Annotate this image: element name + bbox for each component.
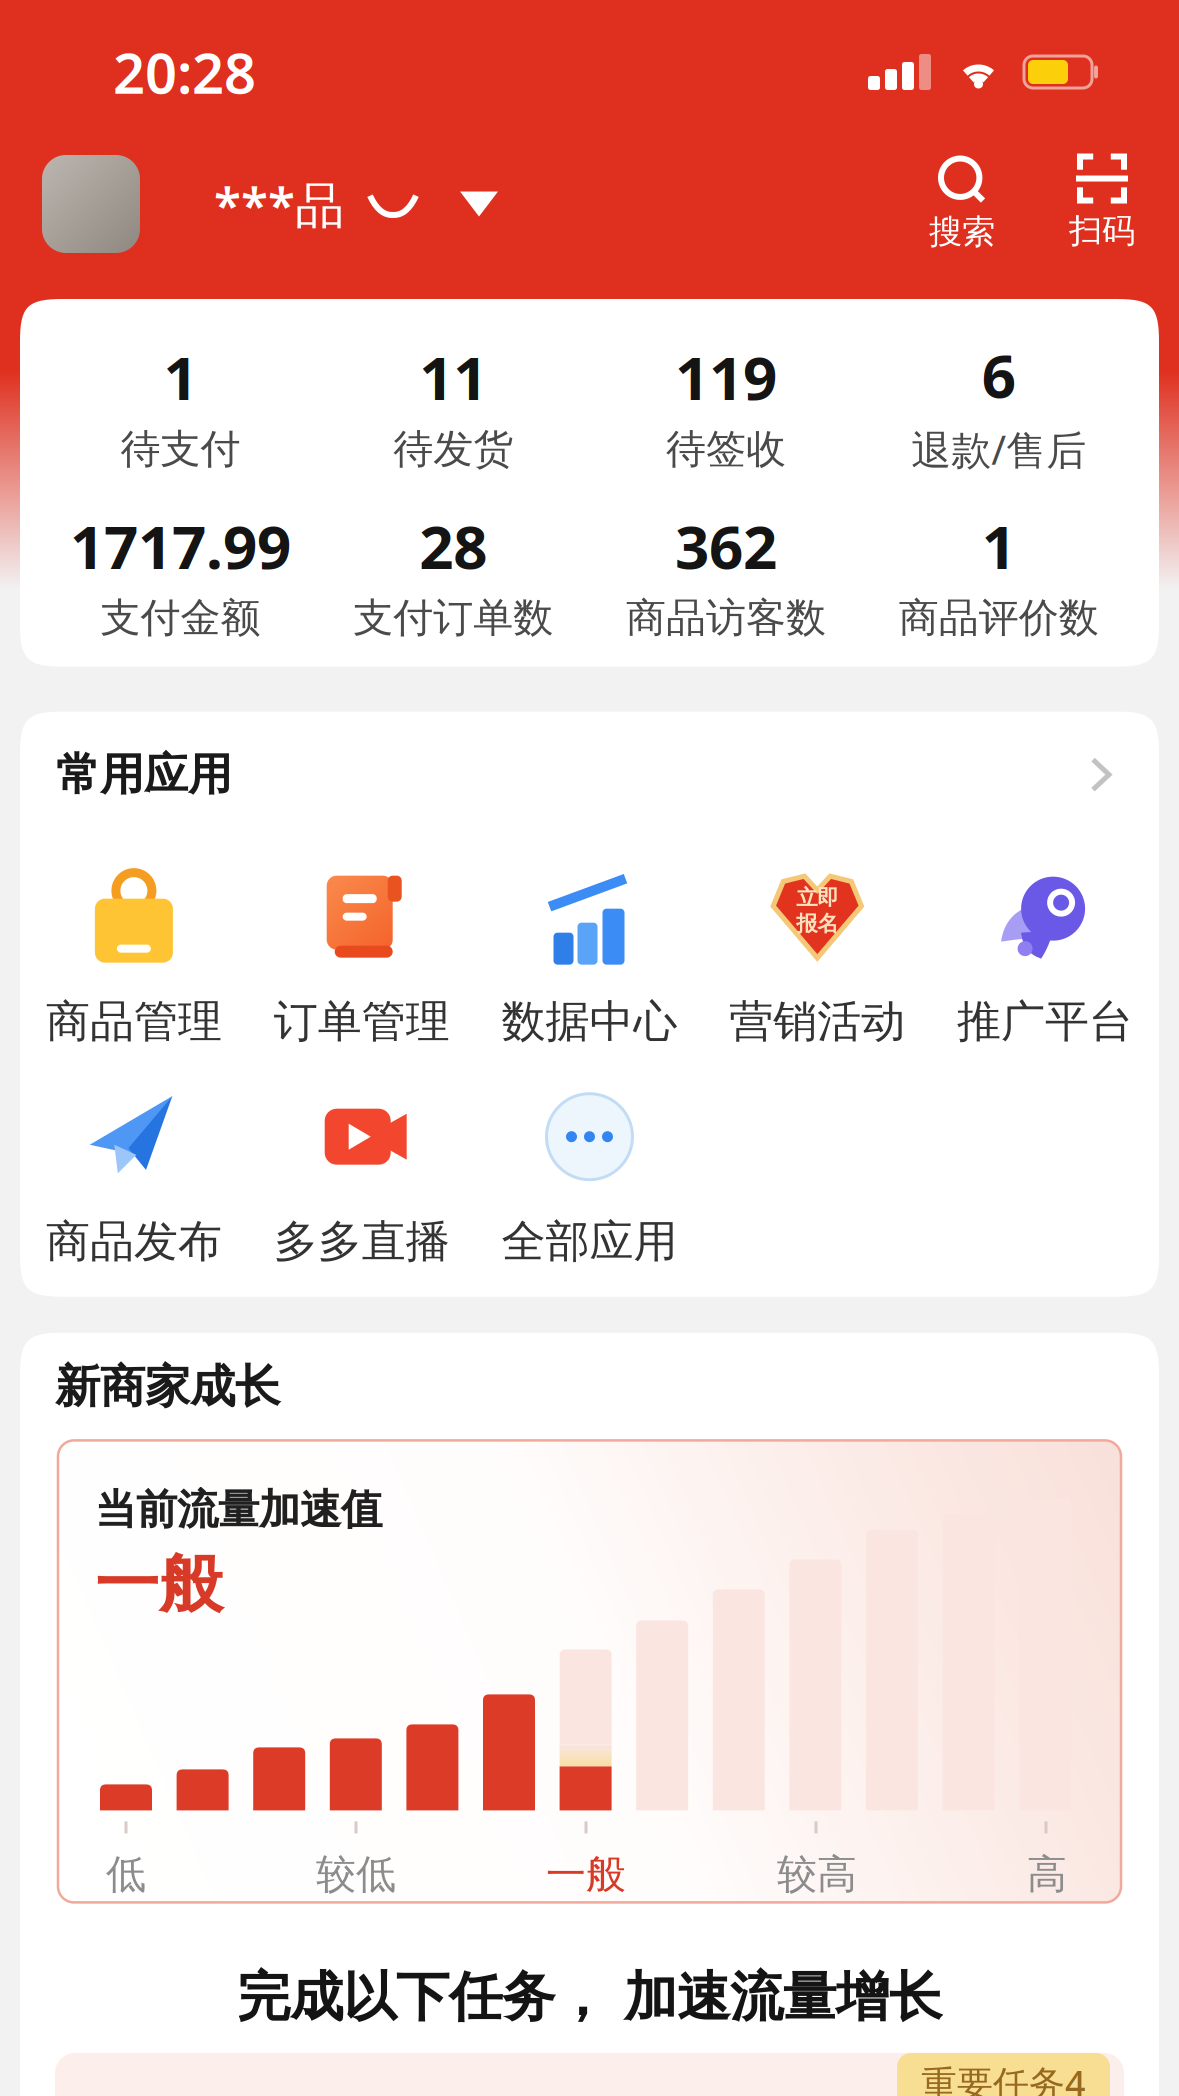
staticText: 商品访客数	[626, 593, 826, 643]
staticText: 11	[419, 337, 487, 417]
staticText: 待发货	[393, 425, 513, 474]
button[interactable]: 重要任务4	[897, 2053, 1110, 2096]
button[interactable]: 1717.99	[44, 506, 317, 643]
staticText: 1717.99	[70, 506, 291, 585]
button[interactable]: 搜索	[929, 155, 995, 252]
staticText: 新商家成长	[55, 1359, 280, 1414]
staticText: 20:28	[113, 35, 256, 109]
button[interactable]: 1	[44, 337, 317, 474]
staticText: 推广平台	[957, 995, 1133, 1049]
staticText: 较高	[777, 1850, 857, 1899]
staticText: 退款/售后	[911, 423, 1086, 476]
staticText: 362	[675, 506, 777, 585]
staticText: 高	[1027, 1850, 1067, 1899]
button[interactable]: 119	[589, 337, 862, 474]
staticText: 商品管理	[46, 995, 222, 1049]
staticText: 搜索	[929, 211, 995, 252]
button[interactable]: 推广平台	[931, 869, 1159, 1049]
staticText: 扫码	[1069, 210, 1135, 251]
staticText: 立即	[796, 884, 838, 911]
staticText: 营销活动	[729, 995, 905, 1049]
staticText: 多多直播	[274, 1215, 450, 1269]
button[interactable]: 1	[862, 506, 1135, 643]
staticText: 常用应用	[56, 748, 232, 802]
staticText: 数据中心	[501, 995, 677, 1049]
staticText: ***品	[214, 171, 344, 237]
button[interactable]: 订单管理	[248, 869, 476, 1049]
staticText: 完成以下任务， 加速流量增长	[237, 1964, 942, 2030]
staticText: 支付订单数	[353, 593, 553, 643]
staticText: 支付金额	[100, 593, 260, 643]
staticText: 一般	[95, 1545, 223, 1624]
staticText: 1	[163, 337, 197, 417]
button[interactable]: 全部应用	[476, 1089, 703, 1269]
staticText: 6	[982, 335, 1016, 415]
button[interactable]: 立即	[703, 869, 931, 1049]
button[interactable]: ***品	[140, 171, 498, 237]
button[interactable]: 店铺头像	[42, 155, 140, 253]
button[interactable]: 6	[862, 335, 1135, 476]
button[interactable]: 362	[589, 506, 862, 643]
button[interactable]: 28	[317, 506, 590, 643]
staticText: 119	[675, 337, 777, 417]
button[interactable]: 11	[317, 337, 590, 474]
staticText: 待签收	[666, 425, 786, 474]
button[interactable]: 常用应用	[20, 712, 1159, 802]
staticText: 重要任务4	[921, 2059, 1086, 2096]
staticText: 低	[106, 1850, 146, 1899]
staticText: 商品评价数	[899, 593, 1099, 643]
button[interactable]: 商品管理	[20, 869, 248, 1049]
staticText: 订单管理	[274, 995, 450, 1049]
staticText: 待支付	[120, 425, 240, 474]
button[interactable]: 商品发布	[20, 1089, 248, 1269]
staticText: 1	[982, 506, 1016, 585]
staticText: 全部应用	[501, 1215, 677, 1269]
staticText: 一般	[546, 1850, 626, 1899]
staticText: 28	[419, 506, 487, 585]
staticText: 商品发布	[46, 1215, 222, 1269]
button[interactable]: 扫码	[1069, 156, 1135, 251]
button[interactable]: 数据中心	[476, 869, 703, 1049]
button[interactable]: 多多直播	[248, 1089, 476, 1269]
staticText: 报名	[796, 911, 838, 937]
staticText: 当前流量加速值	[95, 1484, 382, 1535]
staticText: 较低	[316, 1850, 396, 1899]
